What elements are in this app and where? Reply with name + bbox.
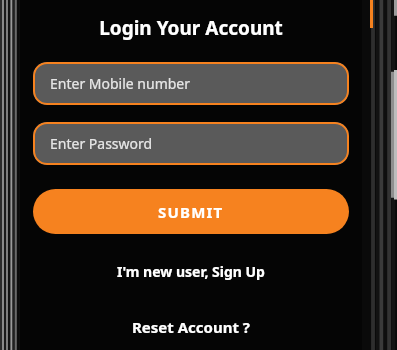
staticText: Enter Password xyxy=(50,134,153,153)
staticText: Reset Account ? xyxy=(132,317,250,337)
button[interactable]: SUBMIT xyxy=(33,189,349,234)
button[interactable]: Enter Mobile number xyxy=(33,62,349,105)
staticText: Enter Mobile number xyxy=(50,74,191,93)
button[interactable]: Enter Password xyxy=(33,122,349,165)
button[interactable]: Reset Account ? xyxy=(20,313,362,341)
button[interactable]: I'm new user, Sign Up xyxy=(20,258,362,284)
staticText: I'm new user, Sign Up xyxy=(117,262,265,281)
staticText: SUBMIT xyxy=(158,202,224,222)
staticText: Login Your Account xyxy=(99,15,283,41)
